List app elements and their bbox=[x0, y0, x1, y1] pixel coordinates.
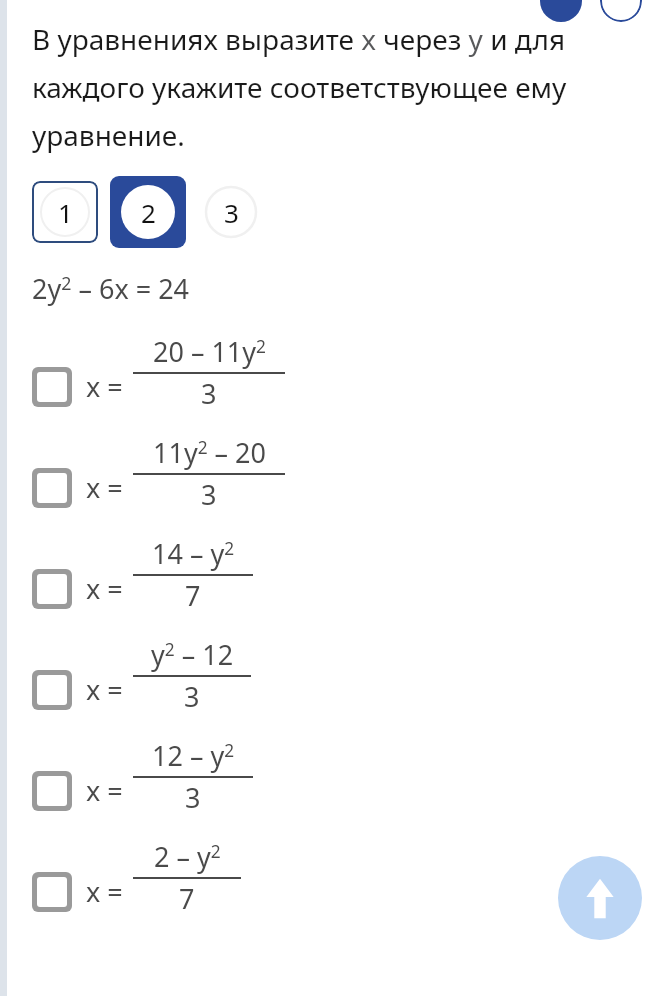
staticText: 11y2 – 20 bbox=[153, 434, 266, 471]
staticText: 7 bbox=[185, 577, 201, 614]
staticText: 2 bbox=[141, 195, 156, 230]
staticText: 7 bbox=[179, 880, 195, 917]
other: Answer option checkbox bbox=[37, 776, 67, 806]
staticText: x = bbox=[86, 368, 123, 405]
staticText: 3 bbox=[184, 678, 200, 715]
button[interactable]: Answer option checkbox bbox=[0, 333, 656, 412]
staticText: x = bbox=[86, 671, 123, 708]
staticText: x = bbox=[86, 873, 123, 910]
button[interactable]: Answer option checkbox bbox=[0, 816, 656, 917]
staticText: 20 – 11y2 bbox=[153, 333, 266, 370]
staticText: 3 bbox=[224, 195, 239, 230]
button[interactable]: Scroll to top bbox=[558, 856, 642, 940]
staticText: 3 bbox=[201, 476, 217, 513]
staticText: y2 – 12 bbox=[151, 636, 234, 673]
other: Answer option checkbox bbox=[37, 675, 67, 705]
button[interactable]: Answer option checkbox bbox=[0, 513, 656, 614]
button[interactable]: Answer option checkbox bbox=[0, 614, 656, 715]
staticText: 1 bbox=[58, 195, 73, 230]
other: Answer option checkbox bbox=[37, 877, 67, 907]
staticText: 2 – y2 bbox=[154, 838, 221, 875]
staticText: 12 – y2 bbox=[152, 737, 235, 774]
other: Answer option checkbox bbox=[37, 574, 67, 604]
button[interactable]: Question indicator outline bbox=[600, 0, 642, 22]
other: Answer option checkbox bbox=[37, 473, 67, 503]
button[interactable]: 1 bbox=[32, 181, 98, 243]
staticText: x = bbox=[86, 570, 123, 607]
button[interactable]: Question indicator filled bbox=[540, 0, 582, 22]
staticText: 2y2 – 6x = 24 bbox=[32, 270, 190, 307]
button[interactable]: Answer option checkbox bbox=[0, 412, 656, 513]
staticText: x = bbox=[86, 772, 123, 809]
other: Answer option checkbox bbox=[37, 372, 67, 402]
button[interactable]: Answer option checkbox bbox=[0, 715, 656, 816]
button[interactable]: 3 bbox=[198, 181, 264, 243]
button[interactable]: 2 bbox=[110, 176, 186, 248]
staticText: 3 bbox=[201, 375, 217, 412]
staticText: 3 bbox=[185, 779, 201, 816]
staticText: x = bbox=[86, 469, 123, 506]
staticText: В уравнениях выразите x через y и для ка… bbox=[32, 20, 638, 154]
staticText: 14 – y2 bbox=[152, 535, 235, 572]
